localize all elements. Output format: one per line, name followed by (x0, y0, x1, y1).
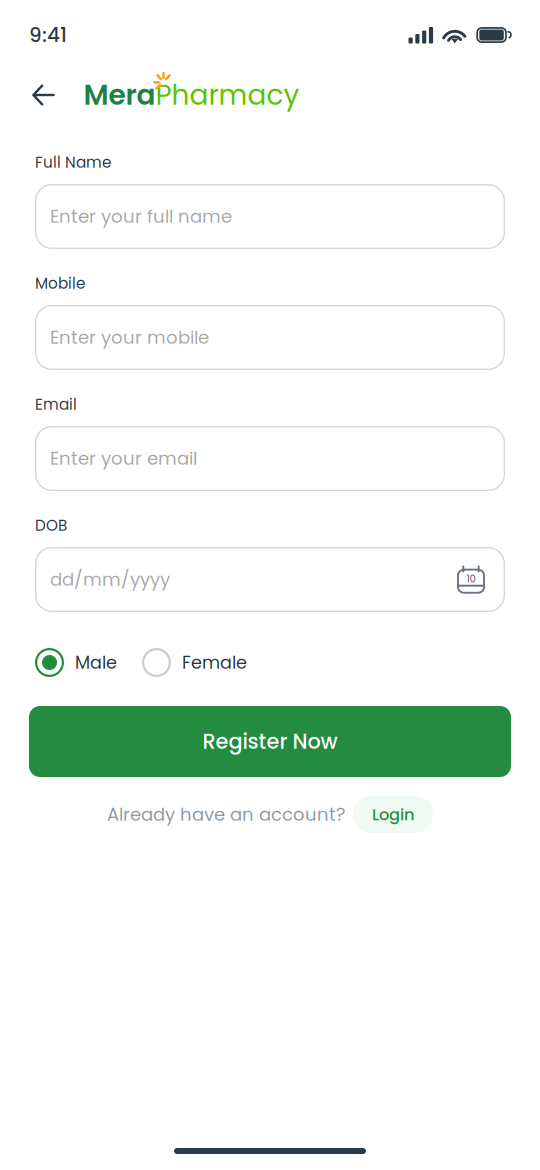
staticText: Enter your email (50, 446, 197, 471)
staticText: Already have an account? (107, 802, 345, 827)
button[interactable]: Register Now (29, 706, 511, 777)
staticText: Male (75, 650, 117, 675)
staticText: Enter your full name (50, 204, 232, 229)
staticText: Female (182, 650, 247, 675)
staticText: Mobile (35, 273, 85, 294)
staticText: Pharmacy (155, 75, 299, 115)
staticText: Login (372, 803, 414, 826)
button[interactable]: Enter your email (35, 426, 505, 491)
button[interactable]: Login (353, 796, 433, 833)
button[interactable]: dd/mm/yyyy (35, 547, 505, 612)
button[interactable]: Male (35, 648, 117, 677)
staticText: Enter your mobile (50, 325, 209, 350)
button[interactable]: Female (142, 648, 247, 677)
staticText: dd/mm/yyyy (50, 567, 170, 592)
staticText: Full Name (35, 152, 111, 173)
button[interactable]: Back (23, 75, 63, 115)
staticText: Email (35, 394, 77, 415)
staticText: DOB (35, 515, 67, 536)
button[interactable]: Enter your full name (35, 184, 505, 249)
staticText: Mera (83, 75, 155, 115)
staticText: Register Now (202, 727, 337, 756)
staticText: 10 (466, 572, 475, 586)
button[interactable]: Enter your mobile (35, 305, 505, 370)
staticText: 9:41 (29, 21, 67, 49)
